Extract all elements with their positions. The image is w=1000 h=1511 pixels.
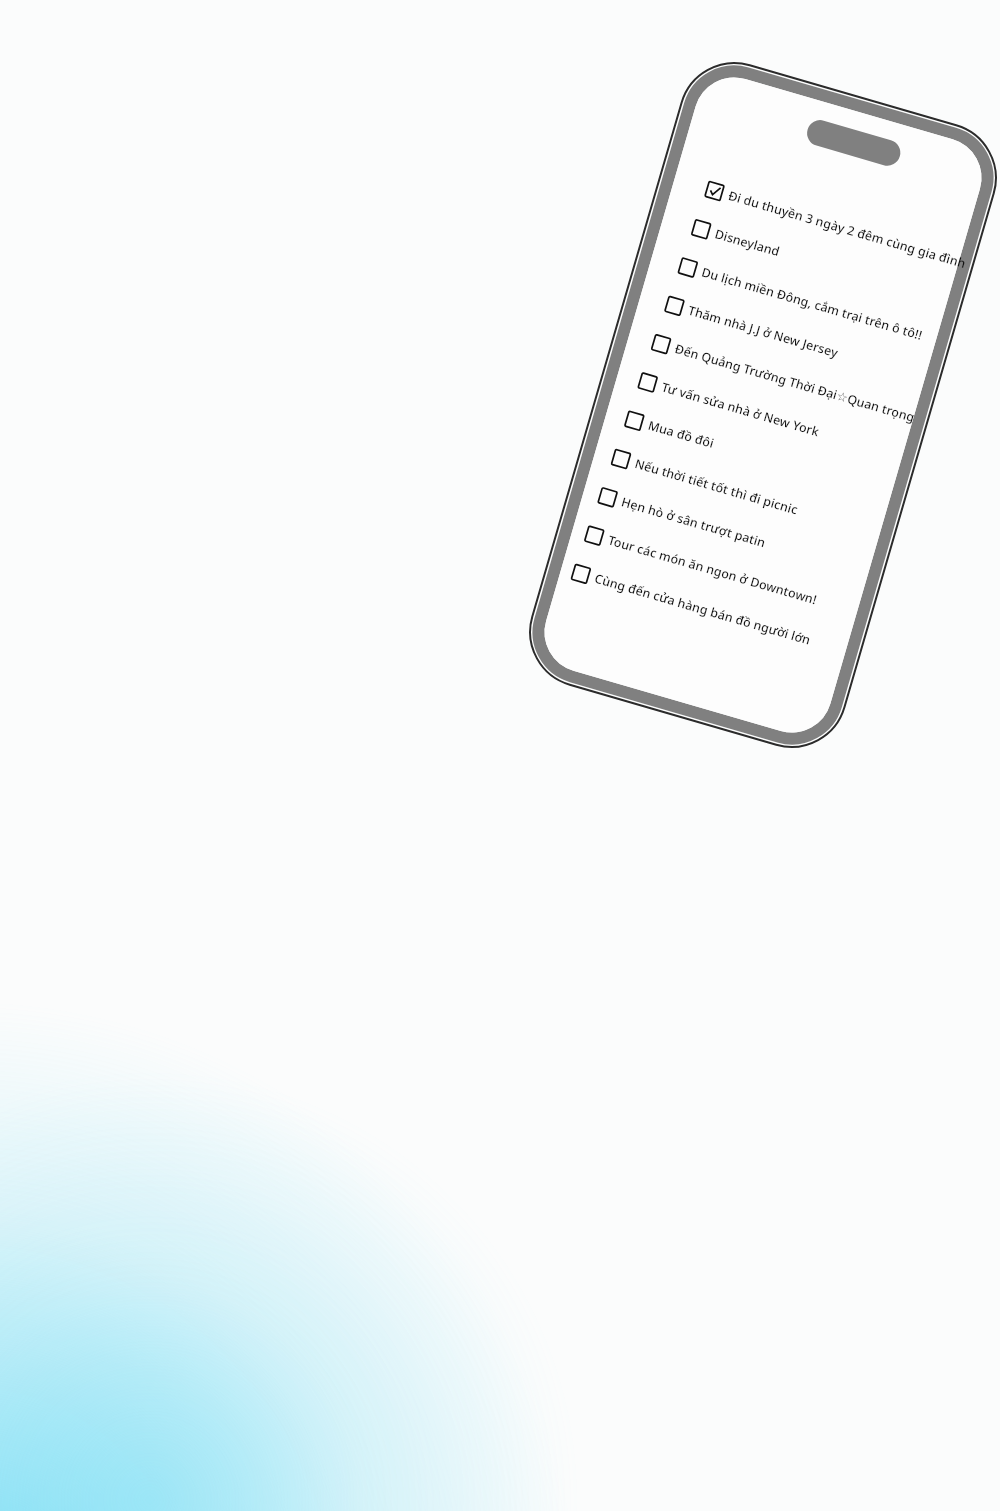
button[interactable]: Tilted phone showing a travel checklist bbox=[0, 0, 1000, 1511]
